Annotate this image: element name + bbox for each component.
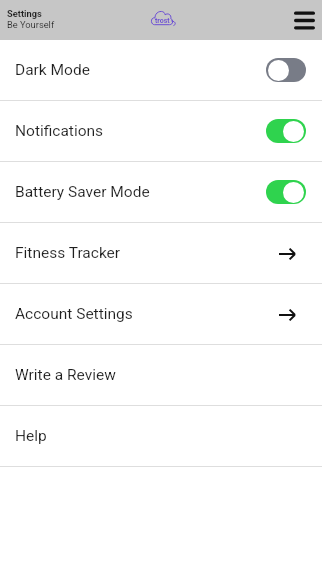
button[interactable]: Fitness Tracker [0, 223, 322, 283]
staticText: trost [155, 17, 170, 25]
button[interactable]: Open navigation menu [294, 10, 315, 31]
button[interactable]: On [266, 119, 306, 143]
staticText: Account Settings [15, 305, 133, 323]
staticText: Write a Review [15, 366, 116, 384]
button[interactable]: Account Settings [0, 284, 322, 344]
staticText: Settings [7, 8, 42, 19]
button[interactable]: Help [0, 406, 322, 466]
staticText: Fitness Tracker [15, 244, 121, 262]
staticText: Be Yourself [7, 19, 55, 30]
button[interactable]: Dark Mode [0, 40, 322, 100]
button[interactable]: On [266, 180, 306, 204]
staticText: Battery Saver Mode [15, 183, 150, 201]
staticText: Dark Mode [15, 61, 90, 79]
staticText: Notifications [15, 122, 104, 140]
staticText: Help [15, 427, 47, 445]
button[interactable]: Notifications [0, 101, 322, 161]
button[interactable]: Write a Review [0, 345, 322, 405]
button[interactable]: Battery Saver Mode [0, 162, 322, 222]
button[interactable]: Off [266, 58, 306, 82]
